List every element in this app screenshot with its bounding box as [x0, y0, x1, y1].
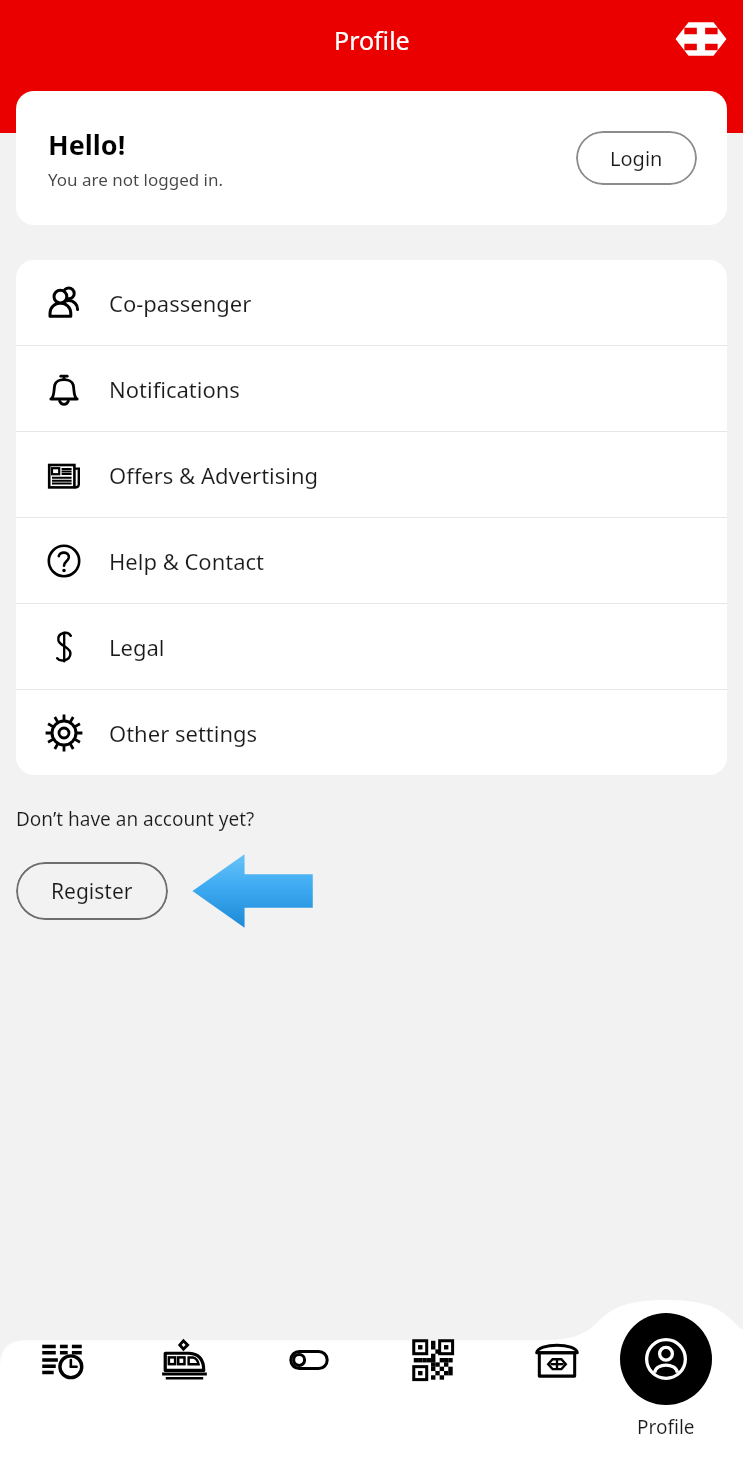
staticText: Don’t have an account yet?	[16, 806, 255, 832]
button[interactable]: Notifications	[16, 346, 727, 431]
staticText: Login	[610, 145, 663, 172]
button[interactable]: Offers & Advertising	[16, 432, 727, 517]
button[interactable]: Trains	[123, 1334, 247, 1408]
staticText: Notifications	[109, 374, 240, 404]
button[interactable]: Timetable	[0, 1334, 123, 1408]
staticText: Register	[51, 877, 133, 906]
button[interactable]: SBB logo	[675, 19, 727, 59]
button[interactable]: Other settings	[16, 690, 727, 775]
staticText: You are not logged in.	[48, 168, 224, 191]
staticText: Offers & Advertising	[109, 460, 319, 490]
staticText: Legal	[109, 632, 165, 662]
button[interactable]: Login	[576, 131, 697, 185]
staticText: Profile	[334, 23, 410, 57]
staticText: Help & Contact	[109, 546, 265, 576]
button[interactable]: Help & Contact	[16, 518, 727, 603]
staticText: Co-passenger	[109, 288, 252, 318]
staticText: Hello!	[48, 126, 126, 163]
button[interactable]: Profile	[602, 1313, 730, 1440]
button[interactable]: EasyRide	[247, 1334, 371, 1408]
staticText: Profile	[637, 1414, 695, 1440]
button[interactable]: Co-passenger	[16, 260, 727, 345]
button[interactable]: Tickets	[371, 1334, 495, 1408]
button[interactable]: Register	[16, 862, 168, 920]
button[interactable]: Shop	[495, 1334, 619, 1408]
button[interactable]: Legal	[16, 604, 727, 689]
staticText: Other settings	[109, 718, 258, 748]
